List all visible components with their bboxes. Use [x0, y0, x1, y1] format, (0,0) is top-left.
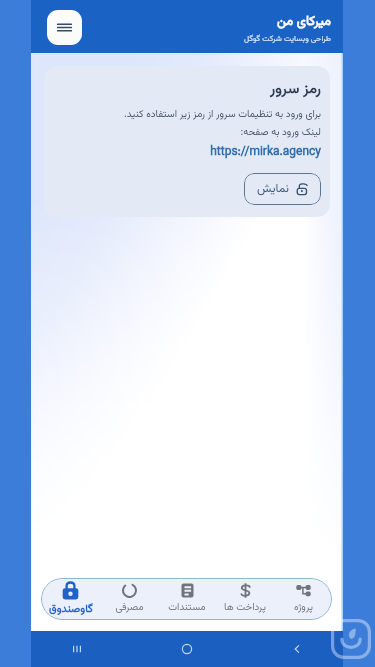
staticText: برای ورود به تنظیمات سرور از رمز زیر است… — [54, 107, 321, 123]
button[interactable]: Home — [177, 639, 197, 659]
button[interactable]: پروژه — [274, 578, 332, 620]
staticText: پرداخت ها — [224, 600, 266, 616]
button[interactable]: مستندات — [158, 578, 216, 620]
staticText: لینک ورود به صفحه: — [54, 125, 321, 141]
staticText: طراحی وبسایت شرکت گوگل — [244, 33, 331, 46]
staticText: پروژه — [294, 600, 313, 616]
button[interactable]: نمایش — [244, 173, 321, 205]
button[interactable]: Recent apps — [67, 639, 87, 659]
staticText: رمز سرور — [270, 78, 321, 101]
staticText: میرکای من — [276, 12, 331, 32]
button[interactable]: پرداخت ها — [216, 578, 274, 620]
button[interactable]: گاوصندوق — [41, 578, 100, 620]
button[interactable]: Open navigation menu — [47, 10, 82, 45]
staticText: گاوصندوق — [49, 601, 93, 618]
staticText: مصرفی — [115, 600, 144, 616]
button[interactable]: مصرفی — [100, 578, 158, 620]
staticText: https://mirka.agency — [54, 143, 321, 162]
staticText: مستندات — [168, 600, 206, 616]
button[interactable]: Back — [287, 639, 307, 659]
staticText: نمایش — [256, 180, 289, 199]
